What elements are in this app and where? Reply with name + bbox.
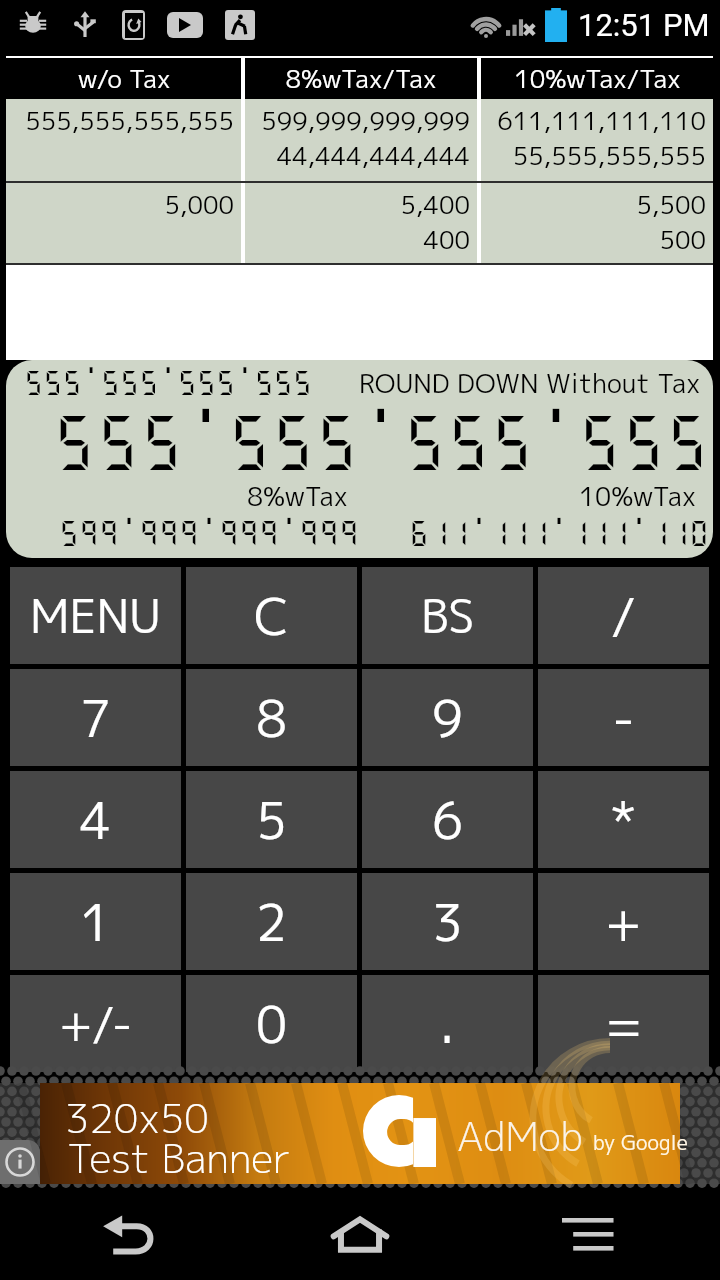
- staticText: 2: [256, 887, 287, 957]
- staticText: 8%wTax/Tax: [285, 61, 437, 96]
- button[interactable]: Home: [260, 1188, 460, 1280]
- staticText: 12:51 PM: [578, 7, 710, 43]
- button[interactable]: 8: [186, 669, 357, 766]
- staticText: 599'999'999'999: [59, 517, 360, 549]
- button[interactable]: .: [362, 975, 533, 1072]
- staticText: 320x50: [65, 1090, 209, 1146]
- staticText: 5,000: [164, 187, 234, 222]
- staticText: +/-: [59, 992, 133, 1056]
- button[interactable]: 4: [10, 771, 181, 868]
- button[interactable]: MENU: [10, 567, 181, 664]
- staticText: 555'555'555'555: [24, 367, 312, 398]
- button[interactable]: 1: [10, 873, 181, 970]
- staticText: 10%wTax/Tax: [514, 61, 681, 96]
- button[interactable]: Ad info: [0, 1083, 40, 1184]
- staticText: 555,555,555,555: [25, 103, 234, 138]
- button[interactable]: 0: [186, 975, 357, 1072]
- staticText: 5,400: [400, 187, 470, 222]
- button[interactable]: 3: [362, 873, 533, 970]
- staticText: ROUND DOWN Without Tax: [359, 365, 701, 401]
- staticText: /: [611, 581, 637, 651]
- button[interactable]: Back: [30, 1188, 230, 1280]
- button[interactable]: 2: [186, 873, 357, 970]
- staticText: C: [254, 581, 289, 651]
- staticText: MENU: [30, 584, 161, 648]
- staticText: BS: [421, 584, 475, 648]
- staticText: 55,555,555,555: [512, 138, 706, 173]
- staticText: *: [610, 785, 637, 855]
- staticText: 0: [256, 989, 287, 1059]
- staticText: .: [440, 989, 455, 1059]
- staticText: 555'555'555'555: [53, 407, 710, 475]
- staticText: 10%wTax: [579, 478, 697, 514]
- staticText: 6: [432, 785, 463, 855]
- staticText: =: [605, 989, 643, 1059]
- staticText: 611'111'111'110: [409, 517, 710, 549]
- button[interactable]: 7: [10, 669, 181, 766]
- button[interactable]: =: [538, 975, 709, 1072]
- button[interactable]: +/-: [10, 975, 181, 1072]
- staticText: 3: [432, 887, 463, 957]
- button[interactable]: Menu: [490, 1188, 690, 1280]
- button[interactable]: -: [538, 669, 709, 766]
- staticText: 599,999,999,999: [261, 103, 470, 138]
- staticText: 44,444,444,444: [276, 138, 470, 173]
- staticText: 1: [80, 887, 111, 957]
- button[interactable]: 9: [362, 669, 533, 766]
- staticText: 5: [256, 785, 287, 855]
- button[interactable]: BS: [362, 567, 533, 664]
- staticText: 400: [423, 222, 470, 257]
- button[interactable]: C: [186, 567, 357, 664]
- staticText: 8: [256, 683, 287, 753]
- staticText: Test Banner: [67, 1130, 291, 1186]
- button[interactable]: 320x50: [40, 1083, 680, 1184]
- button[interactable]: 6: [362, 771, 533, 868]
- staticText: 8%wTax: [247, 478, 348, 514]
- button[interactable]: *: [538, 771, 709, 868]
- staticText: 611,111,111,110: [497, 103, 706, 138]
- staticText: +: [605, 887, 642, 957]
- staticText: 500: [659, 222, 706, 257]
- button[interactable]: +: [538, 873, 709, 970]
- staticText: AdMob: [457, 1109, 583, 1163]
- staticText: 7: [80, 683, 111, 753]
- staticText: 9: [432, 683, 463, 753]
- staticText: -: [612, 683, 635, 753]
- staticText: by Google: [593, 1128, 688, 1156]
- staticText: 4: [80, 785, 111, 855]
- button[interactable]: /: [538, 567, 709, 664]
- staticText: w/o Tax: [77, 61, 171, 96]
- button[interactable]: 5: [186, 771, 357, 868]
- staticText: 5,500: [636, 187, 706, 222]
